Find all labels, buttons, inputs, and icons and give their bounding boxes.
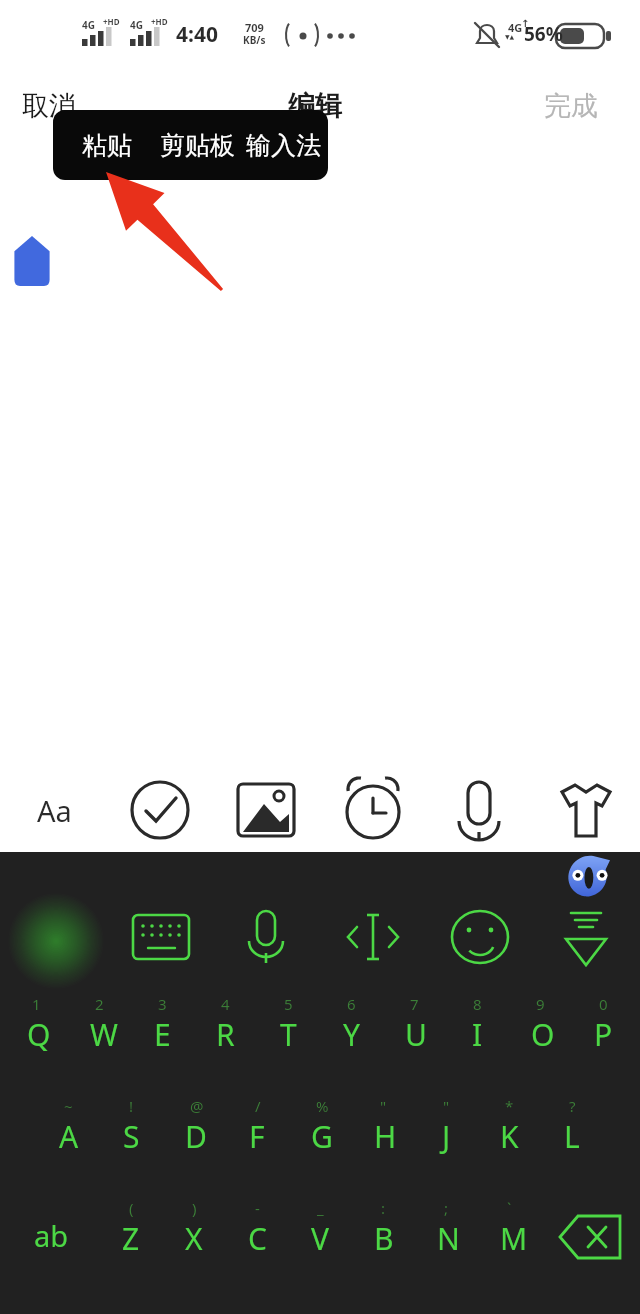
staticText: 粘贴 <box>82 130 132 161</box>
staticText: ~ <box>64 1096 73 1116</box>
button[interactable]: Checklist <box>128 778 192 842</box>
button[interactable]: 粘贴 <box>65 110 149 180</box>
staticText: Z <box>122 1218 140 1259</box>
button[interactable] <box>478 1090 540 1158</box>
button[interactable]: Backspace <box>552 1200 628 1270</box>
button[interactable] <box>541 1090 603 1158</box>
staticText: ab <box>34 1216 69 1255</box>
staticText: ` <box>507 1198 512 1218</box>
staticText: 7 <box>410 994 419 1014</box>
staticText: 输入法 <box>246 130 321 161</box>
staticText: " <box>380 1096 387 1116</box>
staticText: 4:40 <box>176 20 218 49</box>
button[interactable]: 输入法 <box>239 110 328 180</box>
staticText: 取消 <box>22 89 76 123</box>
button[interactable]: 剪贴板 <box>149 110 245 180</box>
button[interactable]: Move cursor <box>339 903 407 971</box>
button[interactable] <box>352 1090 414 1158</box>
staticText: D <box>185 1116 203 1157</box>
staticText: @ <box>190 1096 199 1116</box>
staticText: Aa <box>37 791 72 830</box>
staticText: 1 <box>32 994 41 1014</box>
button[interactable]: Reminder <box>341 778 405 842</box>
button[interactable] <box>289 1090 351 1158</box>
button[interactable] <box>37 1090 99 1158</box>
button[interactable] <box>352 1192 414 1260</box>
button[interactable] <box>100 1090 162 1158</box>
staticText: F <box>249 1116 265 1157</box>
staticText: 剪贴板 <box>160 130 235 161</box>
button[interactable] <box>226 1192 288 1260</box>
staticText: 9 <box>536 994 545 1014</box>
staticText: A <box>59 1116 77 1157</box>
button[interactable]: Theme <box>18 903 86 971</box>
staticText: / <box>255 1096 261 1116</box>
staticText: O <box>531 1014 549 1055</box>
button[interactable]: 编辑 <box>288 84 364 128</box>
staticText: 8 <box>473 994 482 1014</box>
staticText: % <box>316 1096 325 1116</box>
staticText: 4G <box>508 20 523 35</box>
staticText: 2 <box>95 994 104 1014</box>
button[interactable] <box>509 988 571 1056</box>
button[interactable]: Keyboard layout <box>126 903 194 971</box>
button[interactable] <box>163 1090 225 1158</box>
staticText: S <box>123 1116 140 1157</box>
button[interactable]: Style <box>554 778 618 842</box>
staticText: V <box>311 1218 329 1259</box>
button[interactable] <box>100 1192 162 1260</box>
staticText: 709 <box>245 20 264 35</box>
button[interactable]: Voice <box>447 778 511 842</box>
staticText: 56% <box>524 21 563 47</box>
staticText: ↑ <box>521 18 530 30</box>
staticText: 6 <box>347 994 356 1014</box>
staticText: ! <box>129 1096 134 1116</box>
button[interactable] <box>415 1192 477 1260</box>
staticText: 完成 <box>544 89 598 123</box>
button[interactable] <box>446 988 508 1056</box>
button[interactable] <box>226 1090 288 1158</box>
staticText: T <box>280 1014 297 1055</box>
button[interactable] <box>572 988 634 1056</box>
staticText: R <box>216 1014 234 1055</box>
button[interactable] <box>194 988 256 1056</box>
button[interactable] <box>289 1192 351 1260</box>
button[interactable]: 取消 <box>22 84 98 128</box>
staticText: 编辑 <box>288 89 342 123</box>
button[interactable]: Aa <box>22 778 86 842</box>
button[interactable]: Hide keyboard <box>552 903 620 971</box>
button[interactable]: Voice input <box>232 903 300 971</box>
button[interactable] <box>257 988 319 1056</box>
button[interactable] <box>68 988 130 1056</box>
staticText: : <box>381 1198 386 1218</box>
staticText: Q <box>27 1014 45 1055</box>
button[interactable] <box>383 988 445 1056</box>
button[interactable] <box>478 1192 540 1260</box>
staticText: 3 <box>158 994 167 1014</box>
staticText: U <box>405 1014 423 1055</box>
button[interactable] <box>415 1090 477 1158</box>
button[interactable] <box>163 1192 225 1260</box>
staticText: 4 <box>221 994 230 1014</box>
staticText: E <box>154 1014 171 1055</box>
button[interactable]: Assistant <box>566 856 610 898</box>
button[interactable] <box>131 988 193 1056</box>
staticText: +HD <box>103 16 120 27</box>
button[interactable]: Image <box>234 778 298 842</box>
button[interactable]: ab <box>16 1200 86 1270</box>
staticText: G <box>311 1116 329 1157</box>
button[interactable] <box>320 988 382 1056</box>
staticText: ; <box>444 1198 449 1218</box>
button[interactable]: 完成 <box>544 84 620 128</box>
staticText: 5 <box>284 994 293 1014</box>
staticText: K <box>500 1116 518 1157</box>
staticText: M <box>500 1218 518 1259</box>
staticText: N <box>437 1218 455 1259</box>
staticText: C <box>248 1218 266 1259</box>
button[interactable]: Emoji <box>446 903 514 971</box>
staticText: H <box>374 1116 392 1157</box>
button[interactable] <box>5 988 67 1056</box>
staticText: L <box>564 1116 580 1157</box>
staticText: ( <box>129 1198 134 1218</box>
staticText: ? <box>569 1096 576 1116</box>
